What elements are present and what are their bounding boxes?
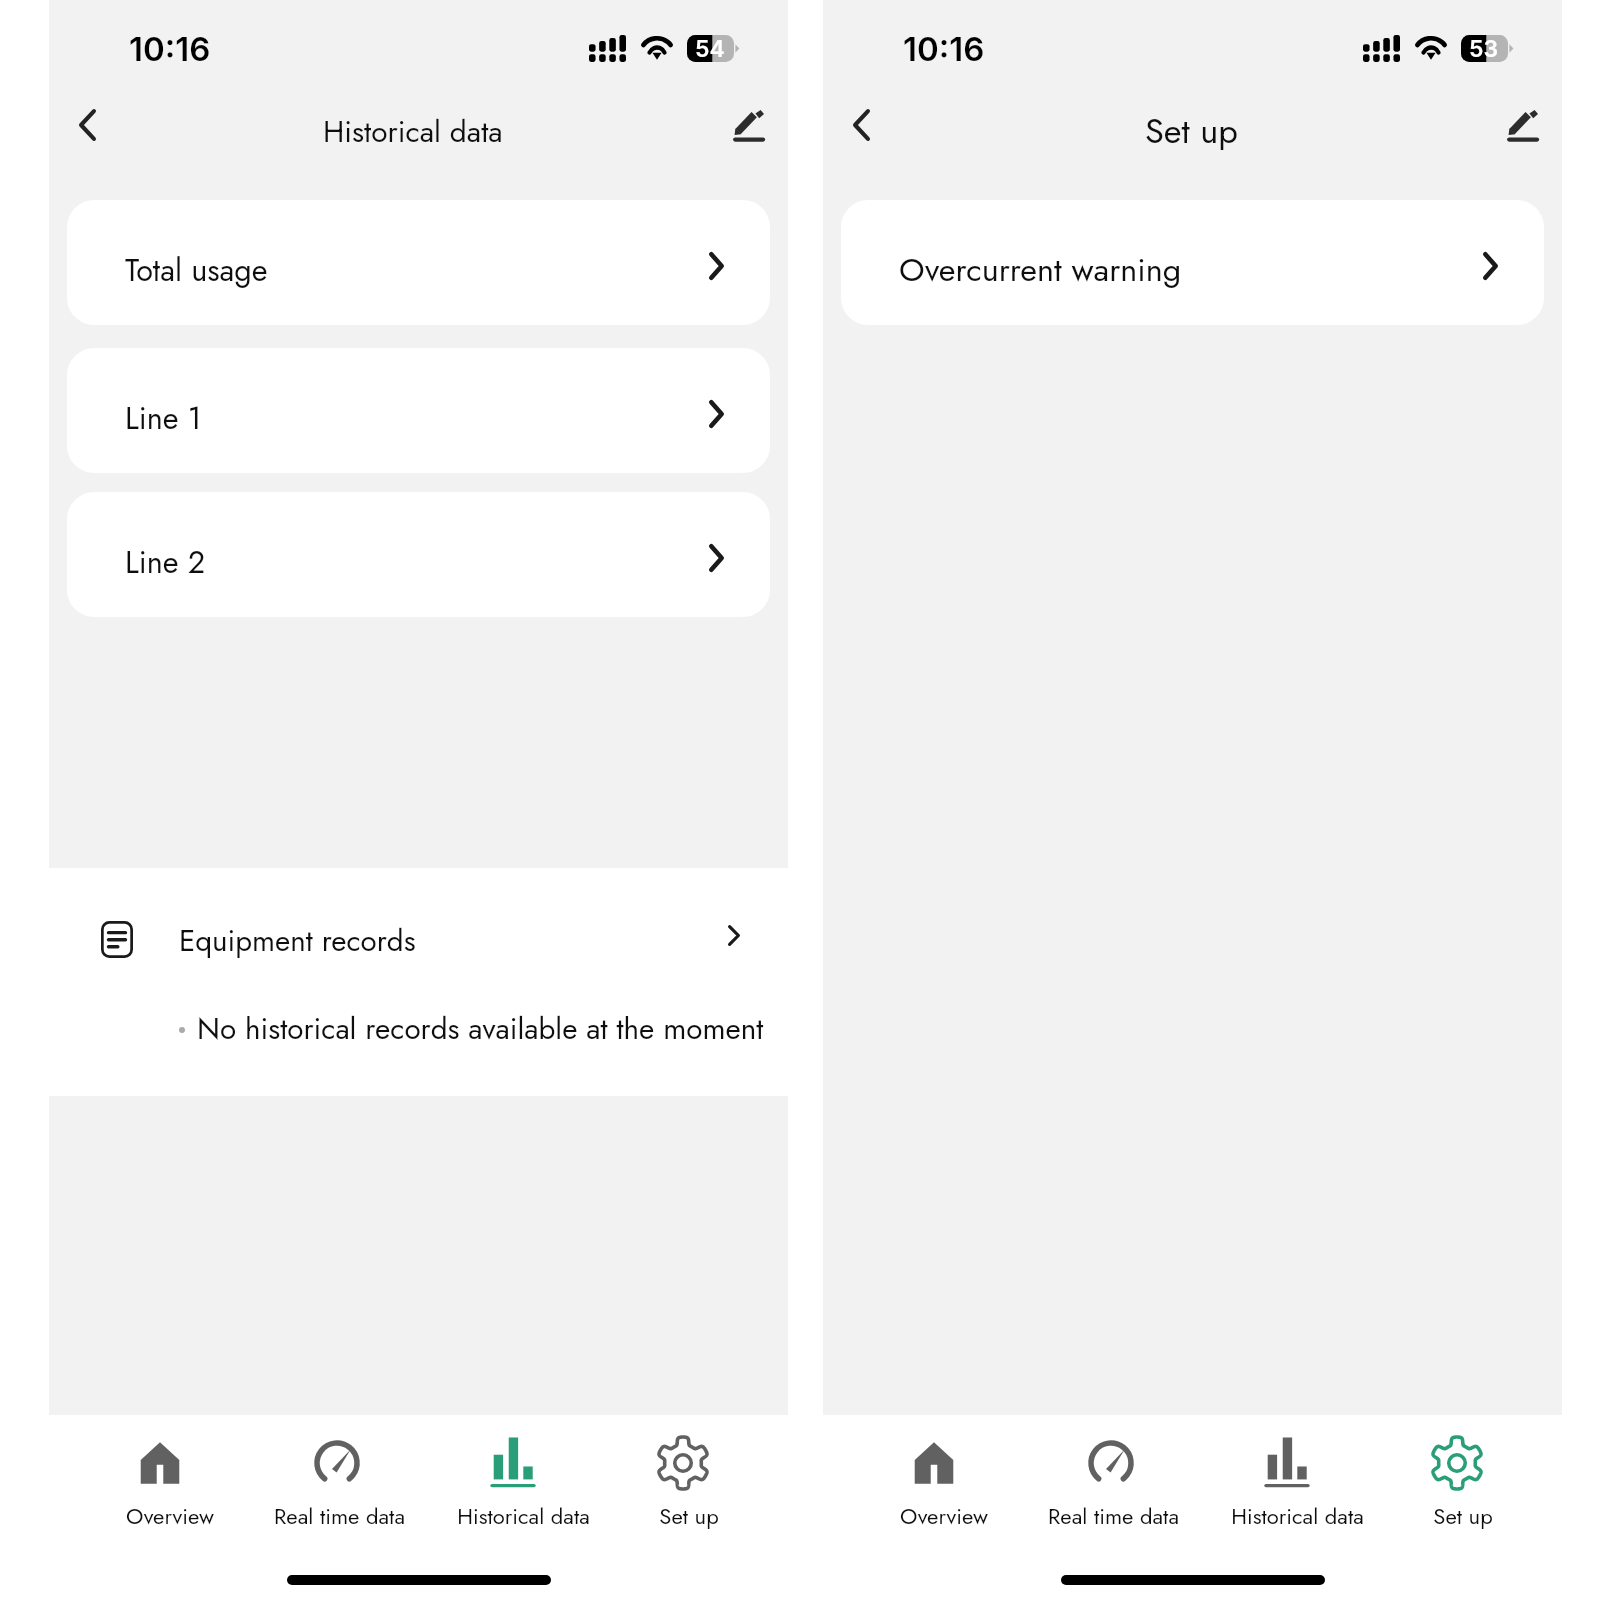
button[interactable]: Equipment records (49, 896, 788, 982)
staticText: Set up (1433, 1500, 1493, 1532)
button[interactable]: Total usage (67, 200, 770, 325)
button[interactable]: Line 2 (67, 492, 770, 617)
staticText: Overview (126, 1500, 214, 1532)
staticText: Equipment records (179, 919, 416, 962)
button[interactable]: Overcurrent warning (841, 200, 1544, 325)
button[interactable]: Edit (717, 91, 783, 157)
staticText: Historical data (1231, 1500, 1364, 1532)
staticText: Overcurrent warning (899, 246, 1182, 293)
button[interactable]: Overview (83, 1415, 247, 1540)
staticText: No historical records available at the m… (197, 1007, 764, 1050)
button[interactable]: Real time data (1017, 1415, 1207, 1540)
staticText: Set up (659, 1500, 719, 1532)
button[interactable]: Edit (1491, 91, 1557, 157)
staticText: Line 2 (125, 540, 206, 584)
staticText: Historical data (457, 1500, 590, 1532)
staticText: Line 1 (125, 396, 202, 440)
button[interactable]: Set up (606, 1415, 766, 1540)
staticText: Historical data (323, 110, 503, 153)
button[interactable]: Set up (1380, 1415, 1540, 1540)
staticText: 54 (695, 35, 725, 62)
staticText: Total usage (125, 248, 268, 292)
staticText: Real time data (1048, 1500, 1179, 1532)
button[interactable]: Real time data (243, 1415, 433, 1540)
button[interactable]: Historical data (426, 1415, 610, 1540)
staticText: 10:16 (129, 29, 211, 69)
button[interactable]: Back (54, 91, 120, 157)
staticText: Real time data (274, 1500, 405, 1532)
staticText: Overview (900, 1500, 988, 1532)
staticText: 53 (1469, 35, 1499, 62)
staticText: 10:16 (903, 29, 985, 69)
button[interactable]: Historical data (1200, 1415, 1384, 1540)
button[interactable]: Line 1 (67, 348, 770, 473)
button[interactable]: Back (828, 91, 894, 157)
button[interactable]: Overview (857, 1415, 1021, 1540)
staticText: Set up (1145, 106, 1238, 156)
